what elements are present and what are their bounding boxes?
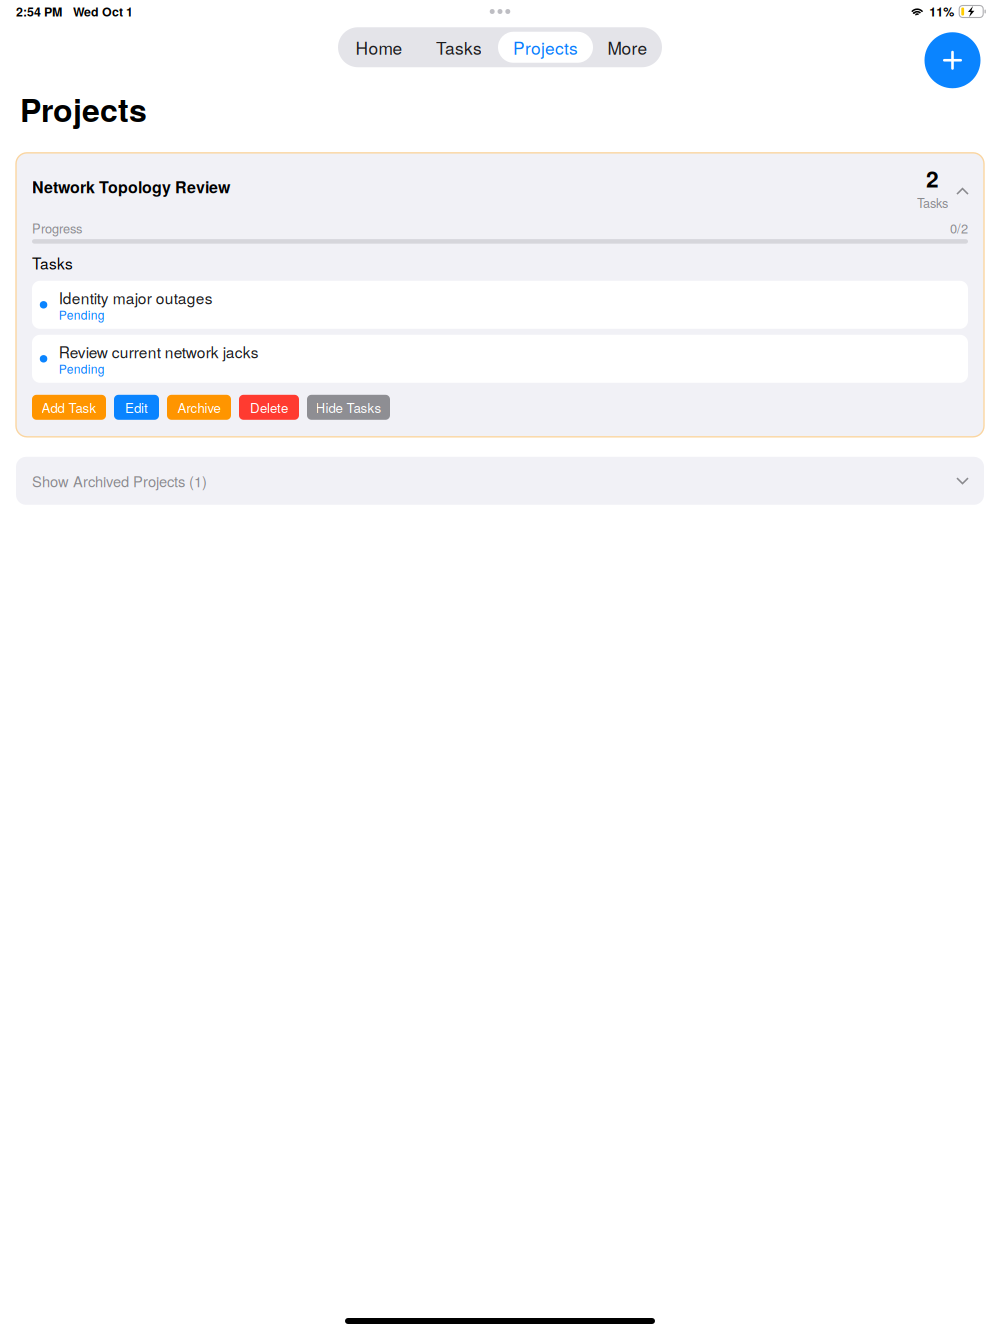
button[interactable]: Add Task: [32, 395, 106, 420]
staticText: Hide Tasks: [315, 398, 381, 417]
button[interactable]: Delete: [239, 395, 299, 420]
staticText: Tasks: [436, 35, 482, 60]
staticText: Archive: [177, 398, 220, 417]
staticText: Edit: [125, 398, 148, 417]
button[interactable]: Show Archived Projects (1): [16, 457, 984, 505]
staticText: 2:54 PM: [16, 3, 62, 20]
staticText: Tasks: [917, 193, 948, 212]
button[interactable]: Identity major outages: [32, 281, 968, 329]
button[interactable]: Archive: [167, 395, 231, 420]
button[interactable]: More: [593, 27, 662, 67]
staticText: Review current network jacks: [59, 340, 259, 362]
staticText: Progress: [32, 219, 82, 237]
staticText: 11%: [929, 3, 954, 20]
staticText: Identity major outages: [59, 286, 213, 308]
staticText: 2: [926, 162, 939, 194]
staticText: Add Task: [41, 398, 96, 417]
staticText: Pending: [59, 360, 105, 377]
staticText: Delete: [250, 398, 288, 417]
staticText: Home: [355, 35, 402, 60]
staticText: Tasks: [32, 252, 73, 274]
button[interactable]: Review current network jacks: [32, 335, 968, 383]
staticText: Network Topology Review: [32, 175, 230, 198]
staticText: Wed Oct 1: [73, 3, 133, 20]
staticText: Projects: [513, 35, 578, 60]
staticText: Show Archived Projects (1): [32, 470, 207, 491]
button[interactable]: Projects: [498, 32, 593, 63]
button[interactable]: Tasks: [420, 27, 498, 67]
staticText: 0/2: [950, 219, 968, 237]
staticText: Pending: [59, 306, 105, 323]
button[interactable]: Add project: [924, 32, 980, 88]
button[interactable]: Edit: [114, 395, 159, 420]
staticText: More: [607, 35, 647, 60]
button[interactable]: Hide Tasks: [307, 395, 390, 420]
staticText: Projects: [20, 86, 147, 132]
button[interactable]: Home: [338, 27, 420, 67]
